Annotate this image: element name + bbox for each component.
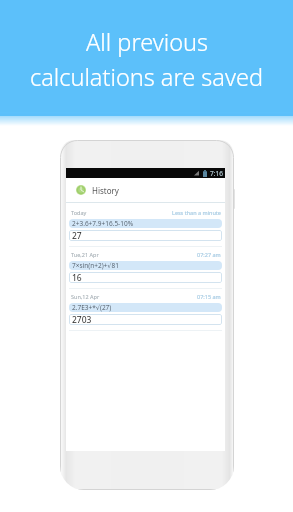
staticText: 2.7E3+*√(27) bbox=[72, 303, 112, 312]
staticText: Today bbox=[71, 209, 87, 216]
staticText: 07:27 am bbox=[197, 251, 221, 258]
staticText: Sun,12 Apr bbox=[71, 293, 100, 300]
staticText: calculations are saved bbox=[30, 61, 263, 93]
staticText: Tue,21 Apr bbox=[71, 251, 99, 258]
staticText: History bbox=[92, 185, 119, 196]
button[interactable]: Sun,12 Apr bbox=[69, 289, 222, 331]
staticText: 16 bbox=[72, 272, 82, 283]
staticText: 27 bbox=[72, 230, 82, 241]
button[interactable]: History bbox=[66, 178, 225, 202]
other: History bbox=[76, 185, 86, 195]
staticText: 2703 bbox=[72, 314, 92, 325]
button[interactable]: Today bbox=[69, 205, 222, 247]
staticText: All previous bbox=[86, 26, 208, 58]
staticText: Less than a minute bbox=[172, 209, 221, 216]
staticText: 7×sin(n+2)+√81 bbox=[72, 261, 119, 270]
button[interactable]: Tue,21 Apr bbox=[69, 247, 222, 289]
staticText: 7:16 bbox=[210, 169, 223, 178]
staticText: 2+3.6+7.9+16.5-10% bbox=[72, 219, 134, 228]
staticText: 07:15 am bbox=[197, 293, 221, 300]
